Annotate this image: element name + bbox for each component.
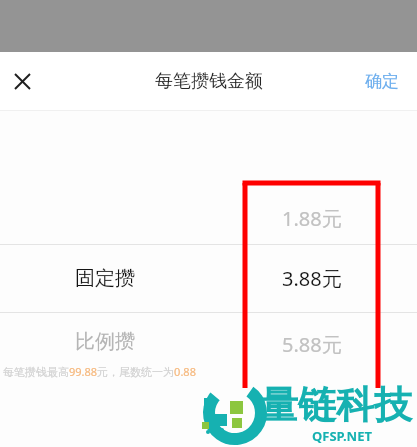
staticText: 每笔攒钱最高99.88元，尾数统一为0.88 bbox=[3, 364, 196, 379]
staticText: 1.88元 bbox=[282, 205, 342, 232]
staticText: 确定 bbox=[365, 71, 399, 92]
staticText: 5.88元 bbox=[282, 331, 342, 358]
staticText: QFSP.NET bbox=[312, 427, 372, 445]
staticText: 每笔攒钱金额 bbox=[155, 70, 263, 93]
staticText: 固定攒 bbox=[75, 266, 135, 291]
staticText: 3.88元 bbox=[282, 265, 342, 292]
staticText: 比例攒 bbox=[75, 329, 135, 354]
button[interactable]: 确定 bbox=[365, 52, 399, 110]
button[interactable]: 1.88元 bbox=[0, 111, 417, 244]
button[interactable]: 固定攒 bbox=[0, 245, 417, 312]
button[interactable]: Close bbox=[0, 59, 44, 103]
button[interactable]: 比例攒 bbox=[0, 313, 417, 383]
staticText: 量链科技 bbox=[260, 381, 412, 429]
